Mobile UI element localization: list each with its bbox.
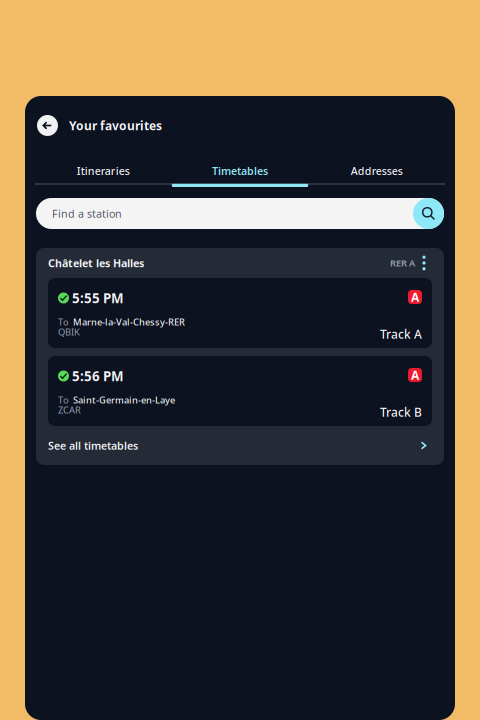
staticText: Find a station xyxy=(52,206,122,221)
staticText: Your favourites xyxy=(69,117,162,133)
staticText: Track B xyxy=(380,404,422,420)
button[interactable]: More options xyxy=(417,254,431,272)
button[interactable]: Timetables xyxy=(172,136,308,187)
staticText: Addresses xyxy=(351,164,403,178)
button[interactable]: 5:55 PM xyxy=(48,278,432,348)
staticText: QBIK xyxy=(58,326,80,338)
staticText: A xyxy=(411,367,419,383)
staticText: Châtelet les Halles xyxy=(48,256,144,270)
staticText: See all timetables xyxy=(48,438,138,453)
staticText: 5:56 PM xyxy=(72,367,124,385)
staticText: To xyxy=(58,316,69,328)
staticText: Marne-la-Val-Chessy-RER xyxy=(73,316,185,328)
staticText: Saint-Germain-en-Laye xyxy=(73,394,175,406)
button[interactable]: See all timetables xyxy=(36,426,444,465)
button[interactable]: Back xyxy=(37,115,58,136)
staticText: Timetables xyxy=(212,164,268,178)
button[interactable]: Itineraries xyxy=(35,136,172,187)
staticText: A xyxy=(411,289,419,305)
staticText: 5:55 PM xyxy=(72,289,124,307)
staticText: Itineraries xyxy=(77,164,130,178)
staticText: Track A xyxy=(380,326,422,342)
staticText: To xyxy=(58,394,69,406)
button[interactable]: Addresses xyxy=(308,136,445,187)
button[interactable]: Search xyxy=(413,198,444,229)
staticText: RER A xyxy=(390,257,415,269)
button[interactable]: 5:56 PM xyxy=(48,356,432,426)
staticText: ZCAR xyxy=(58,404,81,416)
